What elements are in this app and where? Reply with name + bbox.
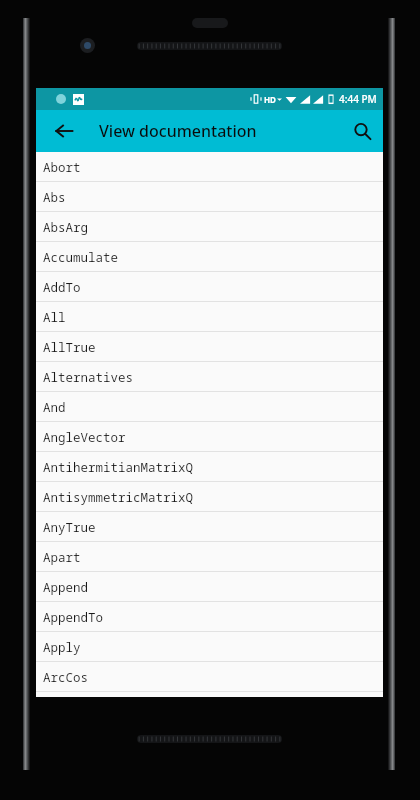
staticText: 4:44 PM — [339, 92, 377, 106]
button[interactable]: AllTrue — [36, 332, 383, 362]
staticText: AllTrue — [43, 339, 96, 356]
staticText: Abort — [43, 159, 81, 176]
button[interactable]: AntisymmetricMatrixQ — [36, 482, 383, 512]
staticText: AngleVector — [43, 429, 126, 446]
button[interactable]: AngleVector — [36, 422, 383, 452]
button[interactable]: AntihermitianMatrixQ — [36, 452, 383, 482]
staticText: All — [43, 309, 66, 326]
staticText: And — [43, 399, 66, 416]
staticText: Abs — [43, 189, 66, 206]
staticText: Apart — [43, 549, 81, 566]
staticText: Accumulate — [43, 249, 119, 266]
staticText: ArcCos — [43, 669, 89, 686]
button[interactable]: Abs — [36, 182, 383, 212]
staticText: Append — [43, 579, 89, 596]
button[interactable]: Alternatives — [36, 362, 383, 392]
staticText: AnyTrue — [43, 519, 96, 536]
staticText: AddTo — [43, 279, 81, 296]
staticText: AbsArg — [43, 219, 89, 236]
button[interactable]: AddTo — [36, 272, 383, 302]
button[interactable]: Back — [44, 110, 84, 152]
button[interactable]: Append — [36, 572, 383, 602]
button[interactable]: Abort — [36, 152, 383, 182]
staticText: AppendTo — [43, 609, 104, 626]
staticText: View documentation — [99, 120, 257, 142]
button[interactable]: AnyTrue — [36, 512, 383, 542]
button[interactable]: Search — [341, 110, 383, 152]
button[interactable]: And — [36, 392, 383, 422]
button[interactable]: Accumulate — [36, 242, 383, 272]
button[interactable]: Apart — [36, 542, 383, 572]
button[interactable]: Apply — [36, 632, 383, 662]
button[interactable]: ArcCos — [36, 662, 383, 692]
staticText: Alternatives — [43, 369, 134, 386]
button[interactable]: AppendTo — [36, 602, 383, 632]
button[interactable]: All — [36, 302, 383, 332]
staticText: HD — [264, 94, 276, 105]
staticText: Apply — [43, 639, 81, 656]
staticText: AntihermitianMatrixQ — [43, 459, 194, 476]
button[interactable]: AbsArg — [36, 212, 383, 242]
staticText: AntisymmetricMatrixQ — [43, 489, 194, 506]
